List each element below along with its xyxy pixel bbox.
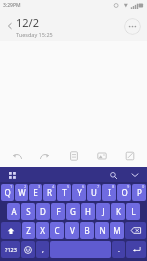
button[interactable]: Backspace <box>125 222 146 239</box>
staticText: M <box>113 225 121 236</box>
staticText: T <box>62 187 67 198</box>
button[interactable]: A <box>7 203 20 220</box>
button[interactable]: G <box>66 203 80 220</box>
button[interactable]: B <box>80 222 94 239</box>
button[interactable]: J <box>96 203 110 220</box>
button[interactable]: N <box>95 222 109 239</box>
staticText: 0 <box>142 184 145 189</box>
staticText: C <box>54 225 60 236</box>
button[interactable]: O <box>117 184 131 201</box>
button[interactable]: , <box>36 241 49 258</box>
button[interactable]: C <box>50 222 64 239</box>
staticText: P <box>137 187 142 198</box>
staticText: , <box>42 245 44 255</box>
button[interactable]: R <box>43 184 56 201</box>
button[interactable]: S <box>21 203 35 220</box>
staticText: 4 <box>52 184 55 189</box>
button[interactable]: D <box>36 203 50 220</box>
button[interactable]: U <box>87 184 101 201</box>
button[interactable]: Space <box>50 241 111 258</box>
staticText: 2 <box>24 184 27 189</box>
button[interactable]: Keyboard menu <box>5 168 19 182</box>
button[interactable]: Search <box>106 168 120 182</box>
button[interactable]: Shift <box>1 222 21 239</box>
button[interactable]: Hide keyboard <box>128 168 142 182</box>
button[interactable]: Redo <box>34 145 56 167</box>
staticText: . <box>118 245 120 255</box>
button[interactable]: ?123 <box>1 241 20 258</box>
staticText: Y <box>77 187 82 198</box>
staticText: E <box>33 187 38 198</box>
button[interactable]: Enter <box>126 241 146 258</box>
staticText: K <box>116 206 121 217</box>
button[interactable]: . <box>112 241 125 258</box>
button[interactable]: M <box>110 222 124 239</box>
button[interactable]: W <box>15 184 28 201</box>
button[interactable]: E <box>29 184 42 201</box>
staticText: D <box>40 206 46 217</box>
button[interactable]: Y <box>72 184 86 201</box>
staticText: 12/2 <box>16 15 39 30</box>
button[interactable]: V <box>65 222 79 239</box>
button[interactable]: K <box>111 203 125 220</box>
button[interactable]: P <box>132 184 146 201</box>
staticText: J <box>102 206 105 217</box>
button[interactable]: T <box>57 184 71 201</box>
staticText: Q <box>4 187 11 198</box>
staticText: G <box>70 206 76 217</box>
button[interactable]: Checklist <box>63 145 85 167</box>
button[interactable]: Insert image <box>91 145 113 167</box>
button[interactable]: More options <box>124 18 141 35</box>
staticText: N <box>99 225 106 236</box>
staticText: B <box>84 225 90 236</box>
staticText: Z <box>26 225 31 236</box>
staticText: 6 <box>82 184 85 189</box>
staticText: H <box>85 206 91 217</box>
button[interactable]: L <box>126 203 140 220</box>
button[interactable]: Draw <box>119 145 141 167</box>
staticText: Tuesday 15:25 <box>16 31 53 38</box>
staticText: F <box>56 206 61 217</box>
staticText: 8 <box>112 184 115 189</box>
staticText: S <box>26 206 31 217</box>
staticText: V <box>70 225 75 236</box>
staticText: 5 <box>67 184 70 189</box>
staticText: O <box>121 187 128 198</box>
button[interactable]: Z <box>22 222 35 239</box>
staticText: ?123 <box>5 246 17 253</box>
button[interactable]: I <box>102 184 116 201</box>
button[interactable]: Emoji <box>21 241 35 258</box>
staticText: A <box>11 206 17 217</box>
button[interactable]: X <box>36 222 49 239</box>
button[interactable]: Undo <box>6 145 28 167</box>
staticText: 7 <box>97 184 100 189</box>
button[interactable]: F <box>51 203 65 220</box>
staticText: I <box>108 187 111 198</box>
staticText: R <box>47 187 52 198</box>
staticText: 3 <box>38 184 41 189</box>
staticText: 9 <box>127 184 130 189</box>
staticText: U <box>91 187 97 198</box>
button[interactable]: H <box>81 203 95 220</box>
staticText: W <box>18 187 26 198</box>
staticText: L <box>131 206 136 217</box>
staticText: X <box>40 225 45 236</box>
staticText: 1 <box>10 184 13 189</box>
button[interactable]: Back <box>4 20 16 32</box>
staticText: 3:29PM <box>3 2 21 9</box>
button[interactable]: Q <box>1 184 14 201</box>
